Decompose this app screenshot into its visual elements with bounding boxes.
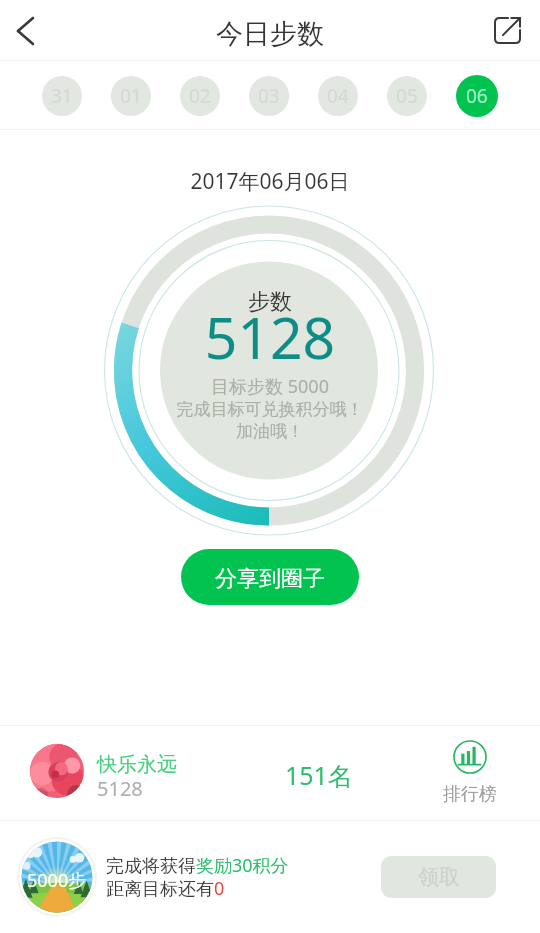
staticText: 领取	[418, 864, 460, 890]
staticText: 151名	[285, 758, 353, 792]
button[interactable]: 03	[249, 76, 289, 116]
staticText: 01	[120, 83, 142, 109]
staticText: 分享到圈子	[215, 565, 325, 593]
button[interactable]: Back	[0, 0, 50, 61]
staticText: 2017年06月06日	[0, 167, 540, 196]
button[interactable]: 04	[318, 76, 358, 116]
staticText: 目标步数 5000	[0, 374, 540, 399]
button[interactable]: 领取	[381, 856, 496, 898]
button[interactable]: Share	[474, 0, 540, 61]
staticText: 5000步	[27, 868, 87, 893]
button[interactable]: 02	[180, 76, 220, 116]
staticText: 快乐永远	[97, 752, 177, 777]
staticText: 02	[189, 83, 211, 109]
staticText: 06	[466, 83, 488, 109]
button[interactable]: 01	[111, 76, 151, 116]
staticText: 5128	[0, 298, 540, 376]
staticText: 完成目标可兑换积分哦！	[0, 399, 540, 420]
button[interactable]: 快乐永远	[0, 726, 540, 820]
button[interactable]: 06	[456, 75, 498, 117]
staticText: 加油哦！	[0, 421, 540, 442]
button[interactable]: 31	[42, 76, 82, 116]
button[interactable]: 05	[387, 76, 427, 116]
staticText: 今日步数	[216, 17, 324, 51]
button[interactable]: 分享到圈子	[181, 549, 359, 605]
staticText: 04	[327, 83, 349, 109]
staticText: 步数	[0, 288, 540, 316]
staticText: 排行榜	[443, 783, 497, 806]
button[interactable]: 排行榜	[415, 726, 525, 820]
staticText: 05	[396, 83, 418, 109]
staticText: 完成将获得奖励30积分 距离目标还有0	[106, 853, 289, 901]
staticText: 31	[51, 83, 73, 109]
staticText: 5128	[97, 775, 143, 802]
staticText: 03	[258, 83, 280, 109]
